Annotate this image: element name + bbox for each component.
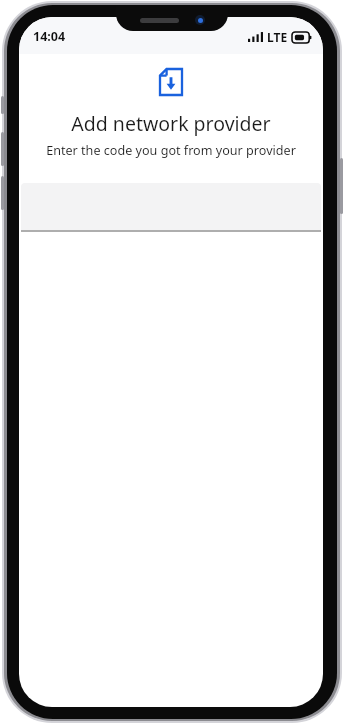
staticText: LTE: [267, 29, 288, 45]
staticText: Add network provider: [19, 110, 323, 137]
staticText: 14:04: [33, 28, 66, 45]
other: Import document: [160, 69, 182, 95]
staticText: Enter the code you got from your provide…: [19, 142, 323, 159]
